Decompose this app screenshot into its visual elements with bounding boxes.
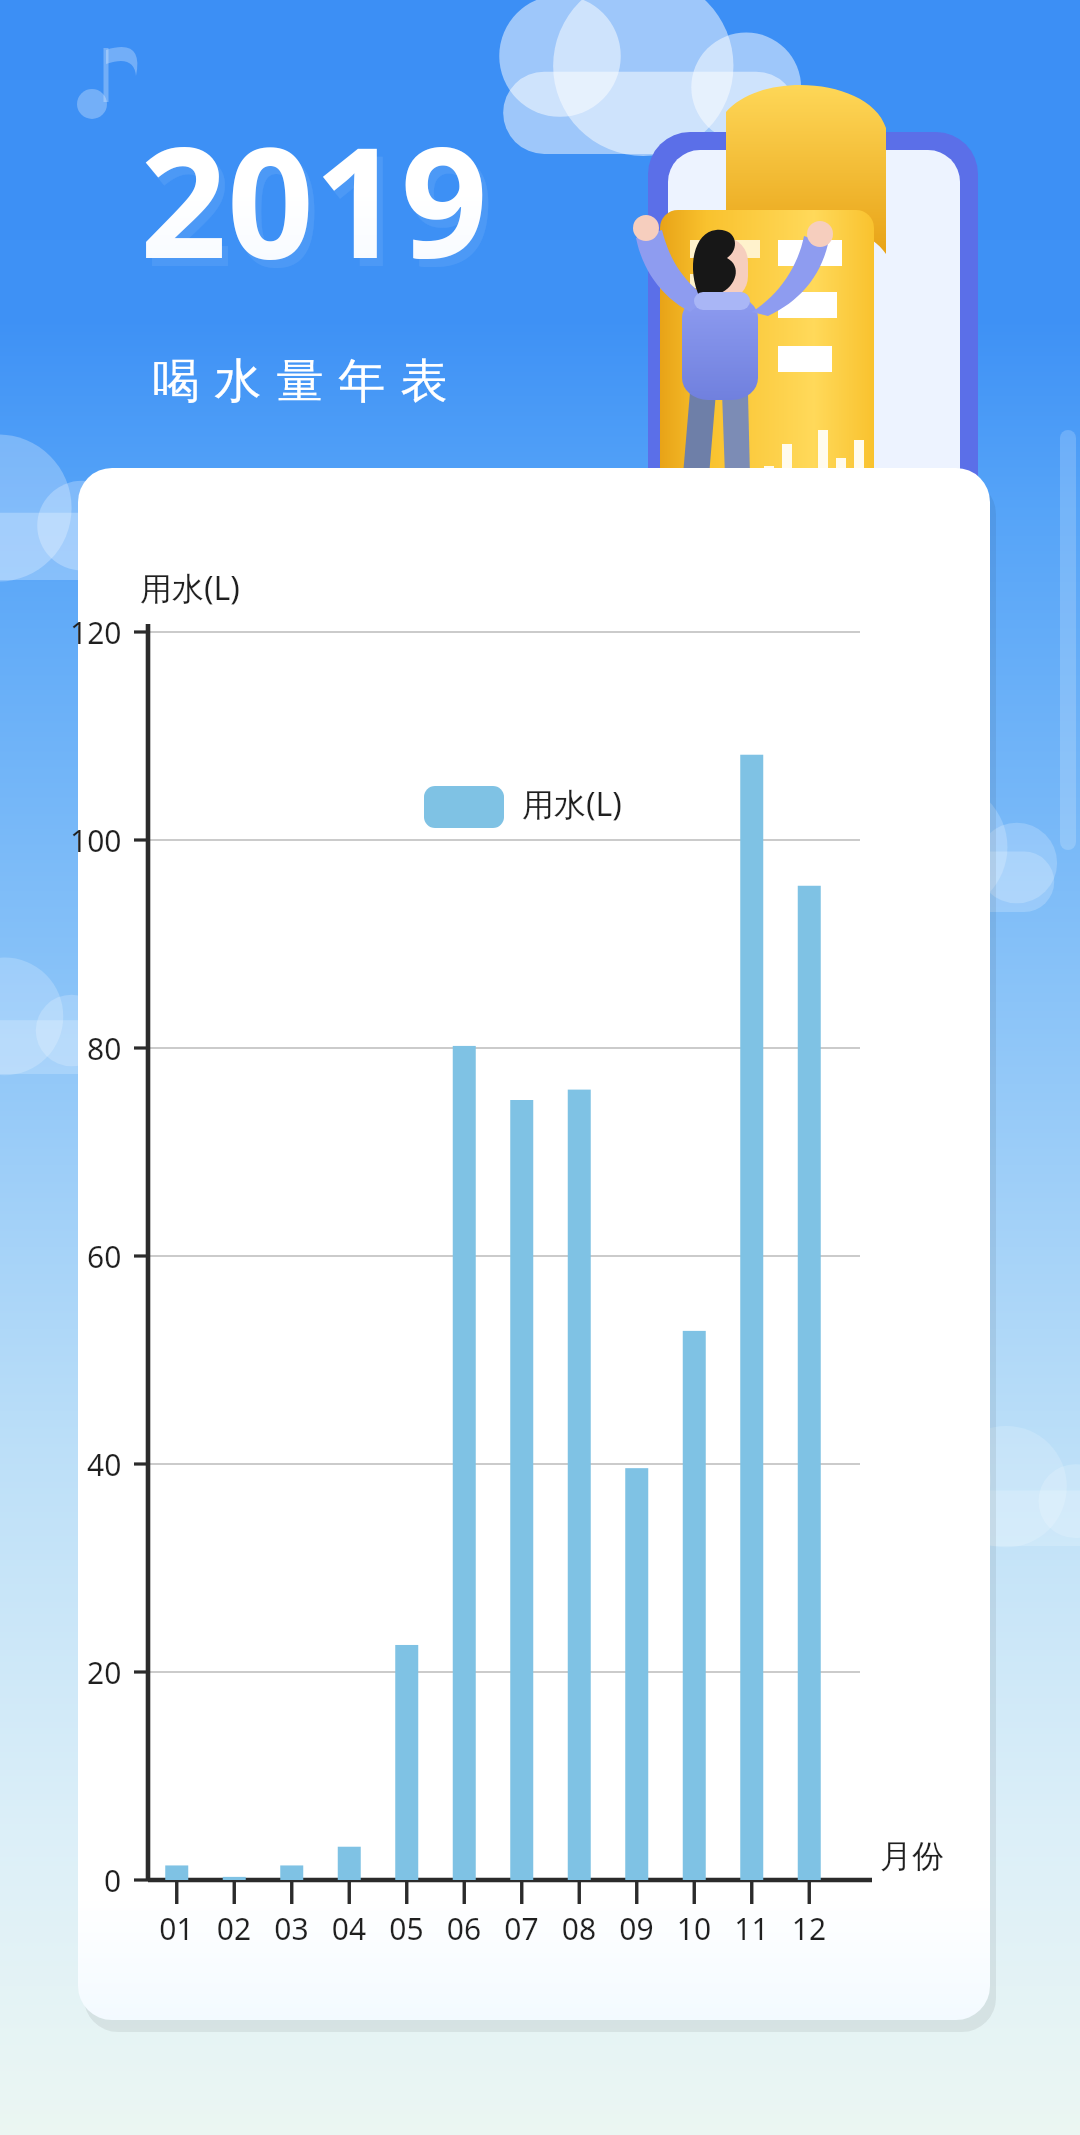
other: Annual water report illustration bbox=[0, 0, 1080, 2135]
button[interactable] bbox=[0, 0, 1080, 2135]
